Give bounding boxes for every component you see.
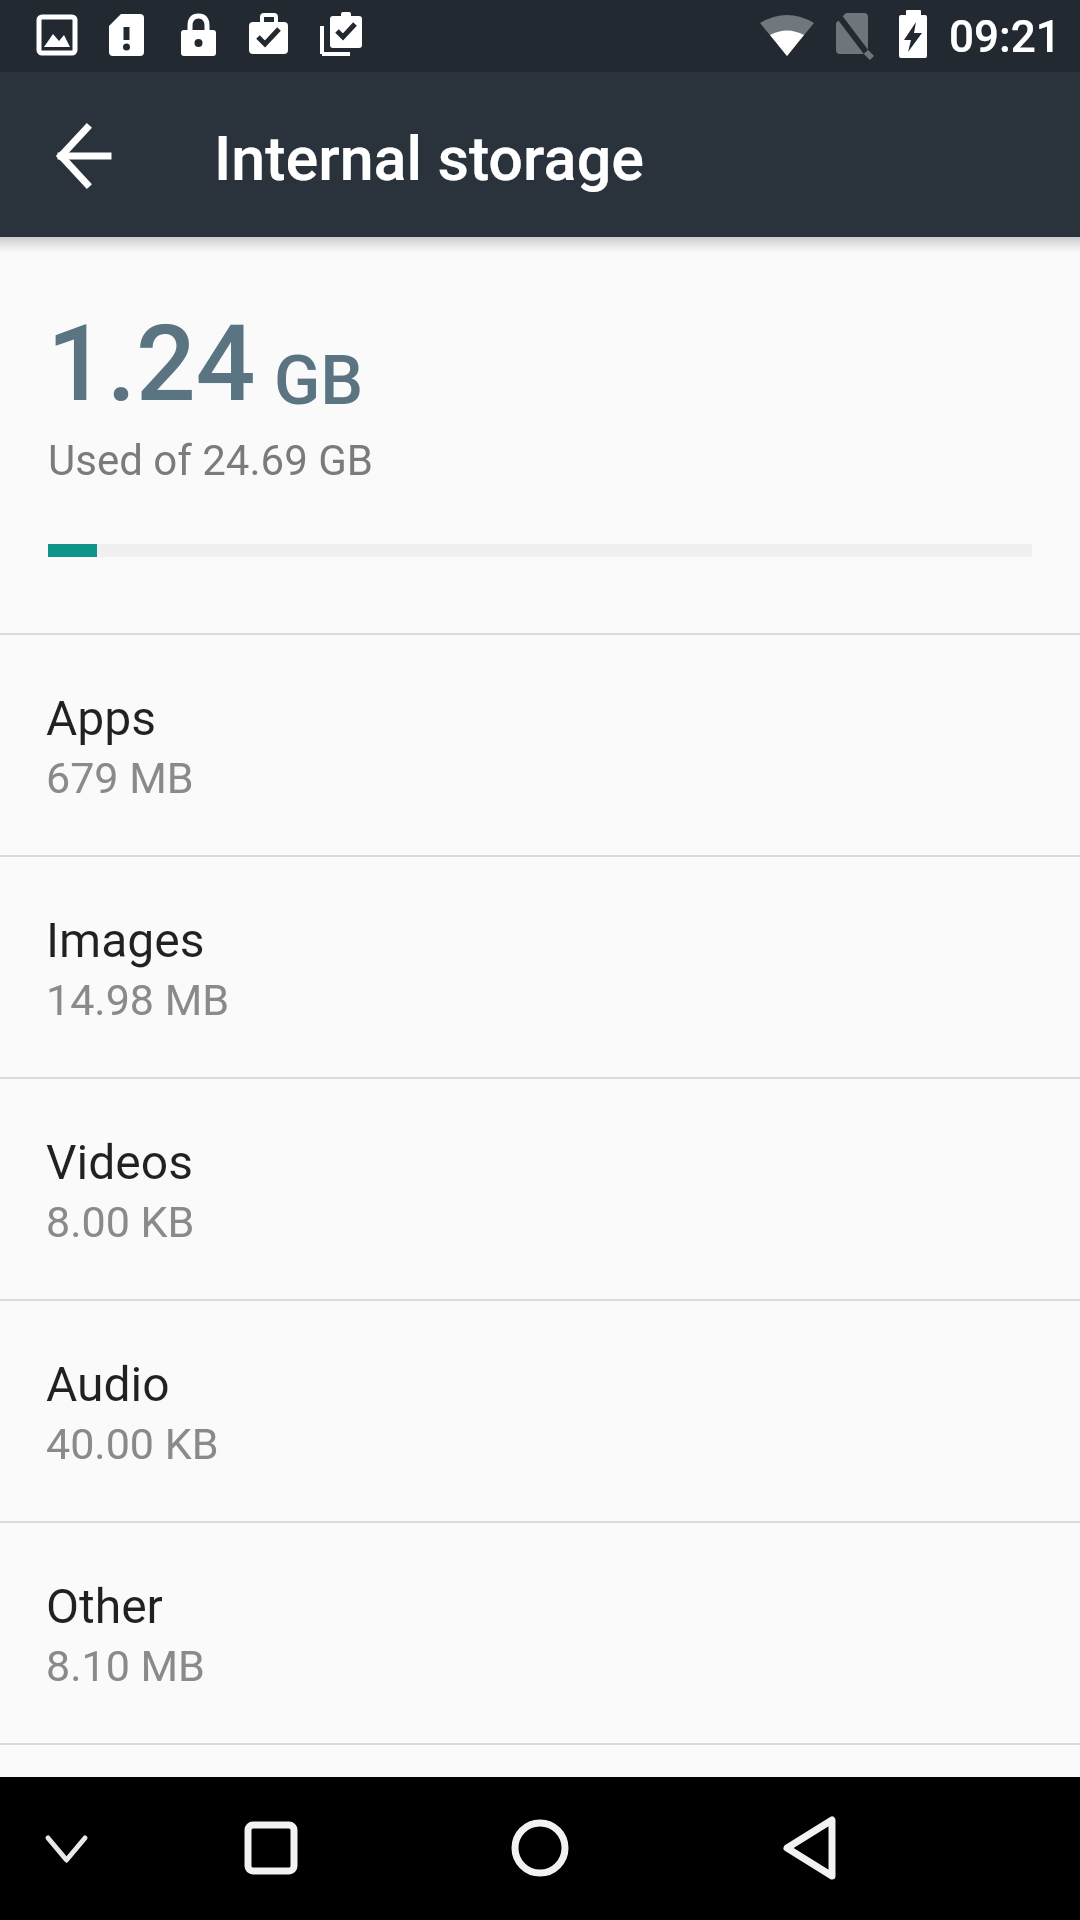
staticText: 14.98 MB [46, 975, 230, 1025]
staticText: 8.00 KB [46, 1197, 195, 1247]
button[interactable]: Apps [0, 635, 1080, 855]
staticText: Apps [46, 690, 156, 746]
staticText: 40.00 KB [46, 1419, 219, 1469]
staticText: Other [46, 1578, 163, 1634]
staticText: GB [274, 341, 364, 421]
staticText: Audio [46, 1356, 170, 1412]
staticText: Used of 24.69 GB [48, 436, 373, 485]
staticText: 8.10 MB [46, 1641, 205, 1691]
staticText: 679 MB [46, 753, 194, 803]
button[interactable]: Videos [0, 1079, 1080, 1299]
button[interactable] [770, 1807, 850, 1887]
button[interactable] [230, 1807, 310, 1887]
button[interactable] [500, 1807, 580, 1887]
button[interactable]: Audio [0, 1301, 1080, 1521]
staticText: Videos [46, 1134, 193, 1190]
button[interactable] [36, 106, 136, 206]
staticText: 09:21 [949, 11, 1061, 63]
staticText: Internal storage [214, 123, 644, 194]
staticText: Images [46, 912, 205, 968]
staticText: 1.24 [47, 303, 256, 426]
button[interactable]: Other [0, 1523, 1080, 1743]
button[interactable] [27, 1808, 107, 1888]
button[interactable]: Images [0, 857, 1080, 1077]
